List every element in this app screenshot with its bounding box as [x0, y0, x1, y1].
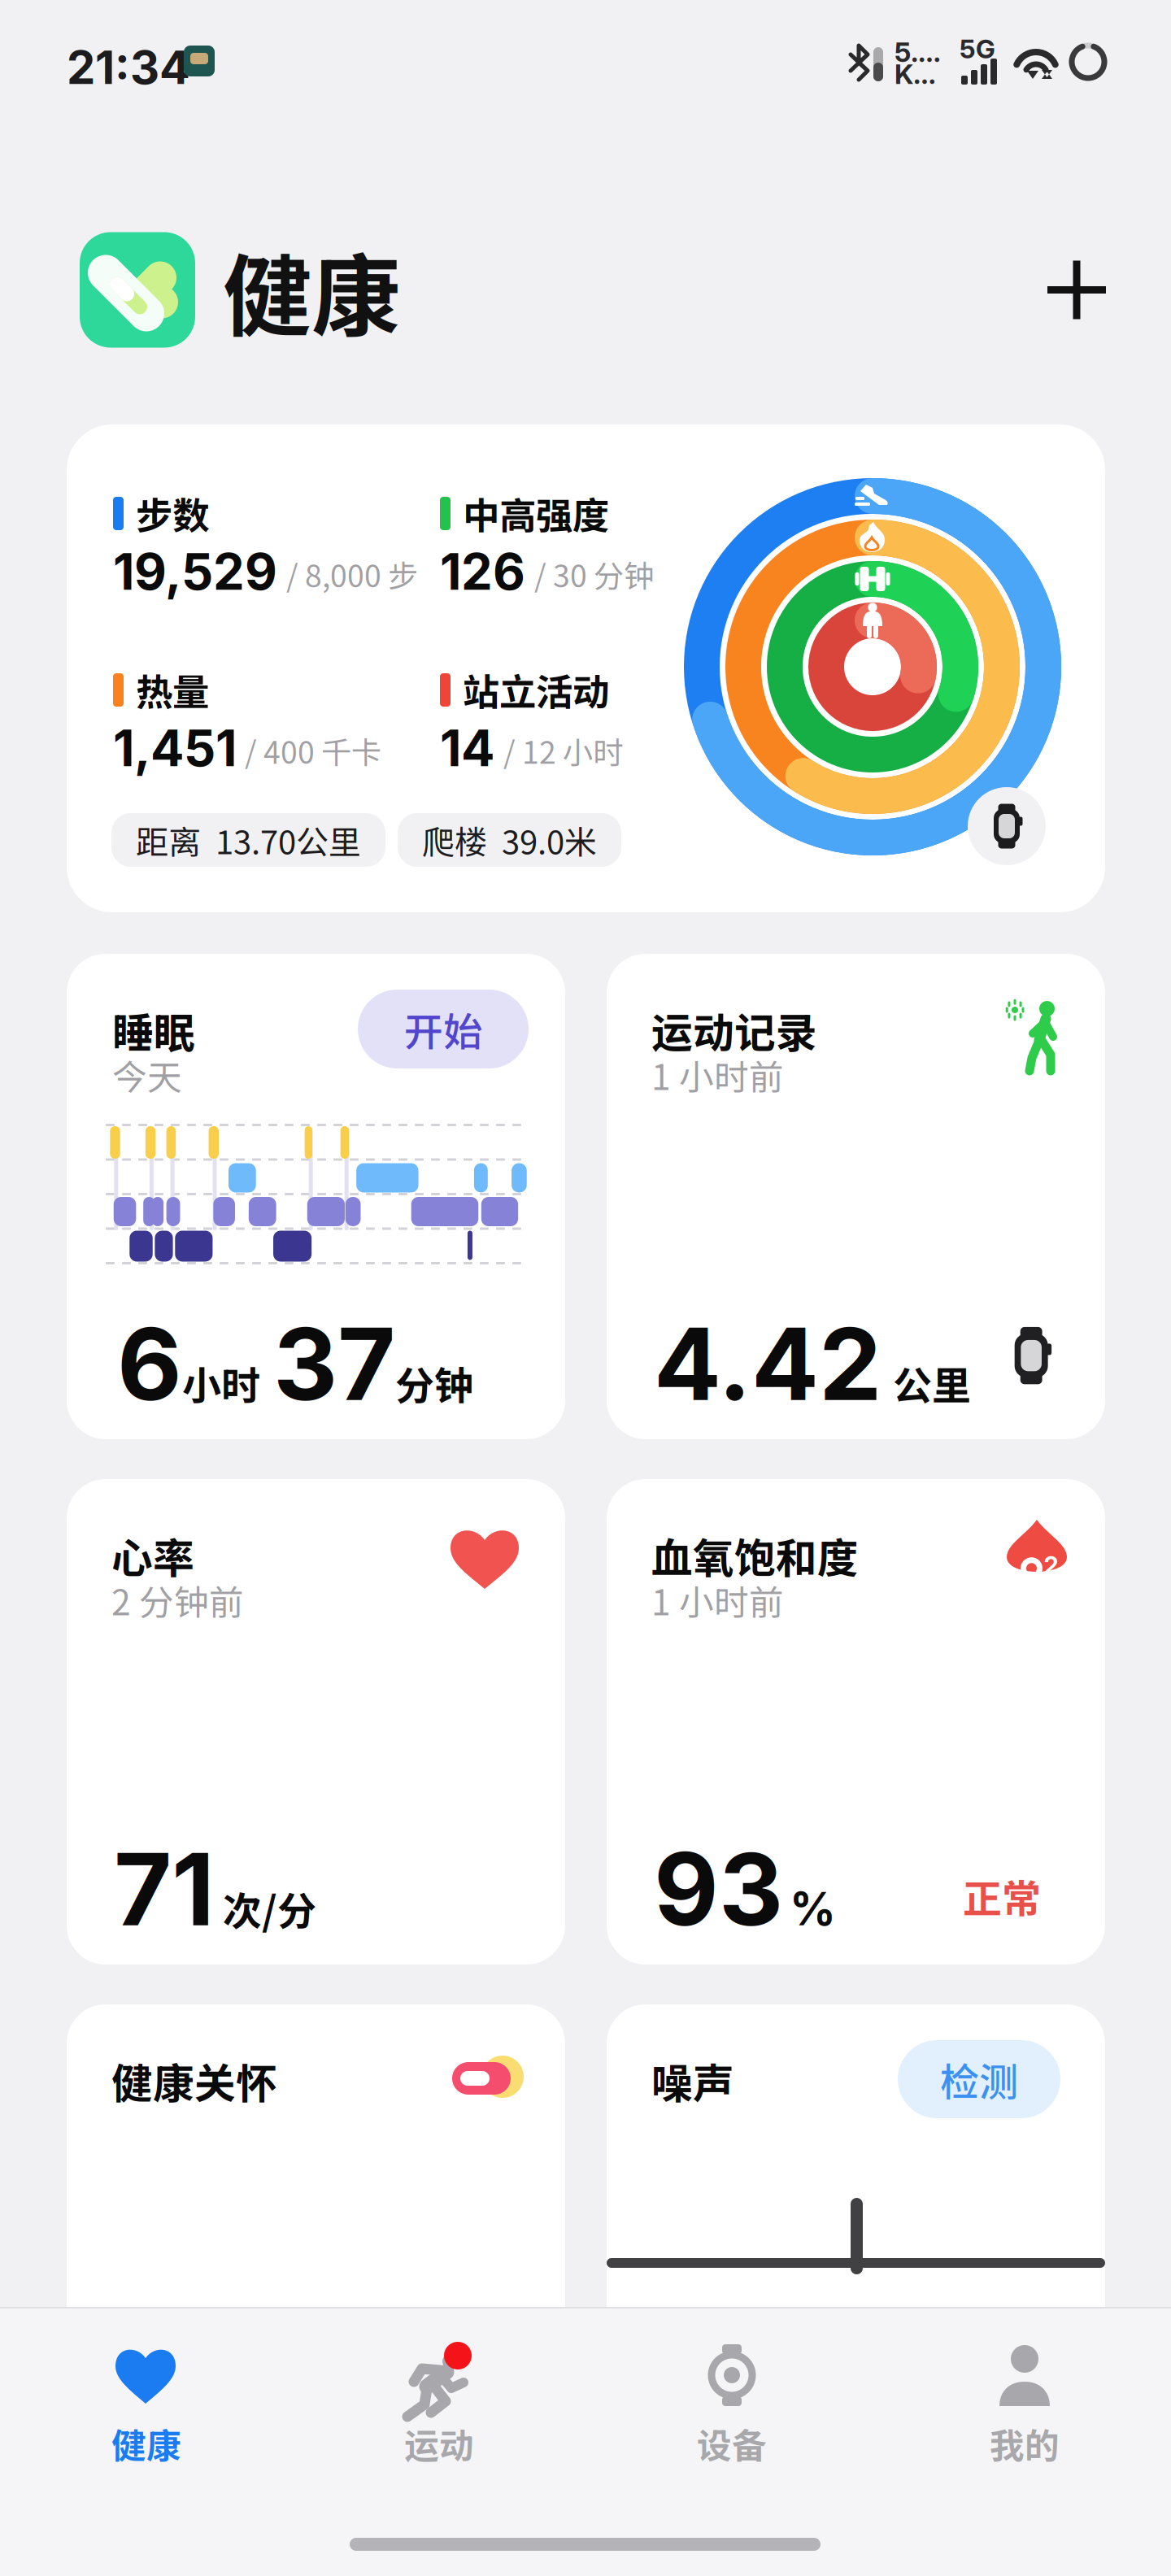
staticText: 设备 [697, 2418, 767, 2469]
button[interactable]: 血氧饱和度 [607, 1479, 1105, 1965]
staticText: 中高强度 [463, 486, 609, 540]
staticText: KB/s [895, 58, 947, 90]
staticText: 小时 [182, 1355, 260, 1411]
staticText: 健康关怀 [111, 2051, 277, 2110]
staticText: 37 [273, 1303, 395, 1424]
button[interactable]: 爬楼 39.0米 [398, 813, 621, 867]
staticText: 睡眠 [112, 1000, 195, 1060]
staticText: 次/分 [223, 1880, 316, 1937]
staticText: 步数 [136, 486, 209, 540]
button[interactable]: 心率 [67, 1479, 565, 1965]
staticText: 距离 13.70公里 [136, 816, 361, 863]
staticText: 2 [1044, 1551, 1058, 1580]
staticText: 1 小时前 [651, 1050, 784, 1100]
staticText: 检测 [940, 2051, 1018, 2107]
staticText: 93 [654, 1829, 783, 1949]
button[interactable]: Watch [968, 787, 1046, 865]
button[interactable]: 噪声 [607, 2004, 1105, 2490]
staticText: 热量 [136, 663, 209, 716]
button[interactable]: 设备 [585, 2339, 878, 2518]
staticText: 爬楼 39.0米 [422, 816, 597, 863]
staticText: / 8,000 步 [286, 552, 418, 596]
staticText: 运动记录 [651, 1000, 817, 1060]
staticText: 健康 [223, 225, 400, 354]
staticText: 6 [117, 1303, 182, 1424]
staticText: 5G [960, 33, 995, 64]
staticText: / 400 千卡 [245, 729, 381, 773]
button[interactable]: 运动 [293, 2339, 585, 2518]
staticText: / 30 分钟 [534, 552, 654, 596]
button[interactable]: 运动记录 [607, 954, 1105, 1439]
staticText: 21:34 [67, 40, 190, 95]
staticText: 1,451 [113, 718, 237, 778]
staticText: 我的 [990, 2418, 1060, 2469]
staticText: 血氧饱和度 [651, 1525, 859, 1585]
button[interactable]: 健康 [0, 2339, 293, 2518]
button[interactable]: 睡眠 [67, 954, 565, 1439]
staticText: % [790, 1881, 836, 1936]
staticText: 126 [440, 541, 525, 602]
staticText: 站立活动 [463, 663, 609, 716]
staticText: / 12 小时 [503, 729, 623, 773]
staticText: 5.90 [895, 36, 947, 68]
staticText: 健康 [111, 2418, 181, 2469]
staticText: 今天 [112, 1050, 182, 1100]
staticText: 2 分钟前 [111, 1575, 244, 1625]
staticText: 公里 [893, 1355, 971, 1411]
staticText: 心率 [111, 1525, 194, 1585]
staticText: 运动 [404, 2418, 474, 2469]
staticText: 正常 [963, 1868, 1041, 1924]
staticText: 噪声 [651, 2051, 734, 2110]
button[interactable]: Add [1028, 241, 1125, 339]
staticText: 分钟 [395, 1355, 473, 1411]
button[interactable]: 我的 [878, 2339, 1171, 2518]
staticText: 19,529 [113, 541, 277, 602]
staticText: 71 [114, 1829, 215, 1949]
staticText: 1 小时前 [651, 1575, 784, 1625]
button[interactable]: 距离 13.70公里 [111, 813, 385, 867]
staticText: 开始 [404, 1001, 482, 1057]
staticText: 4.42 [654, 1303, 882, 1424]
button[interactable]: 健康关怀 [67, 2004, 565, 2490]
staticText: 14 [440, 718, 494, 778]
